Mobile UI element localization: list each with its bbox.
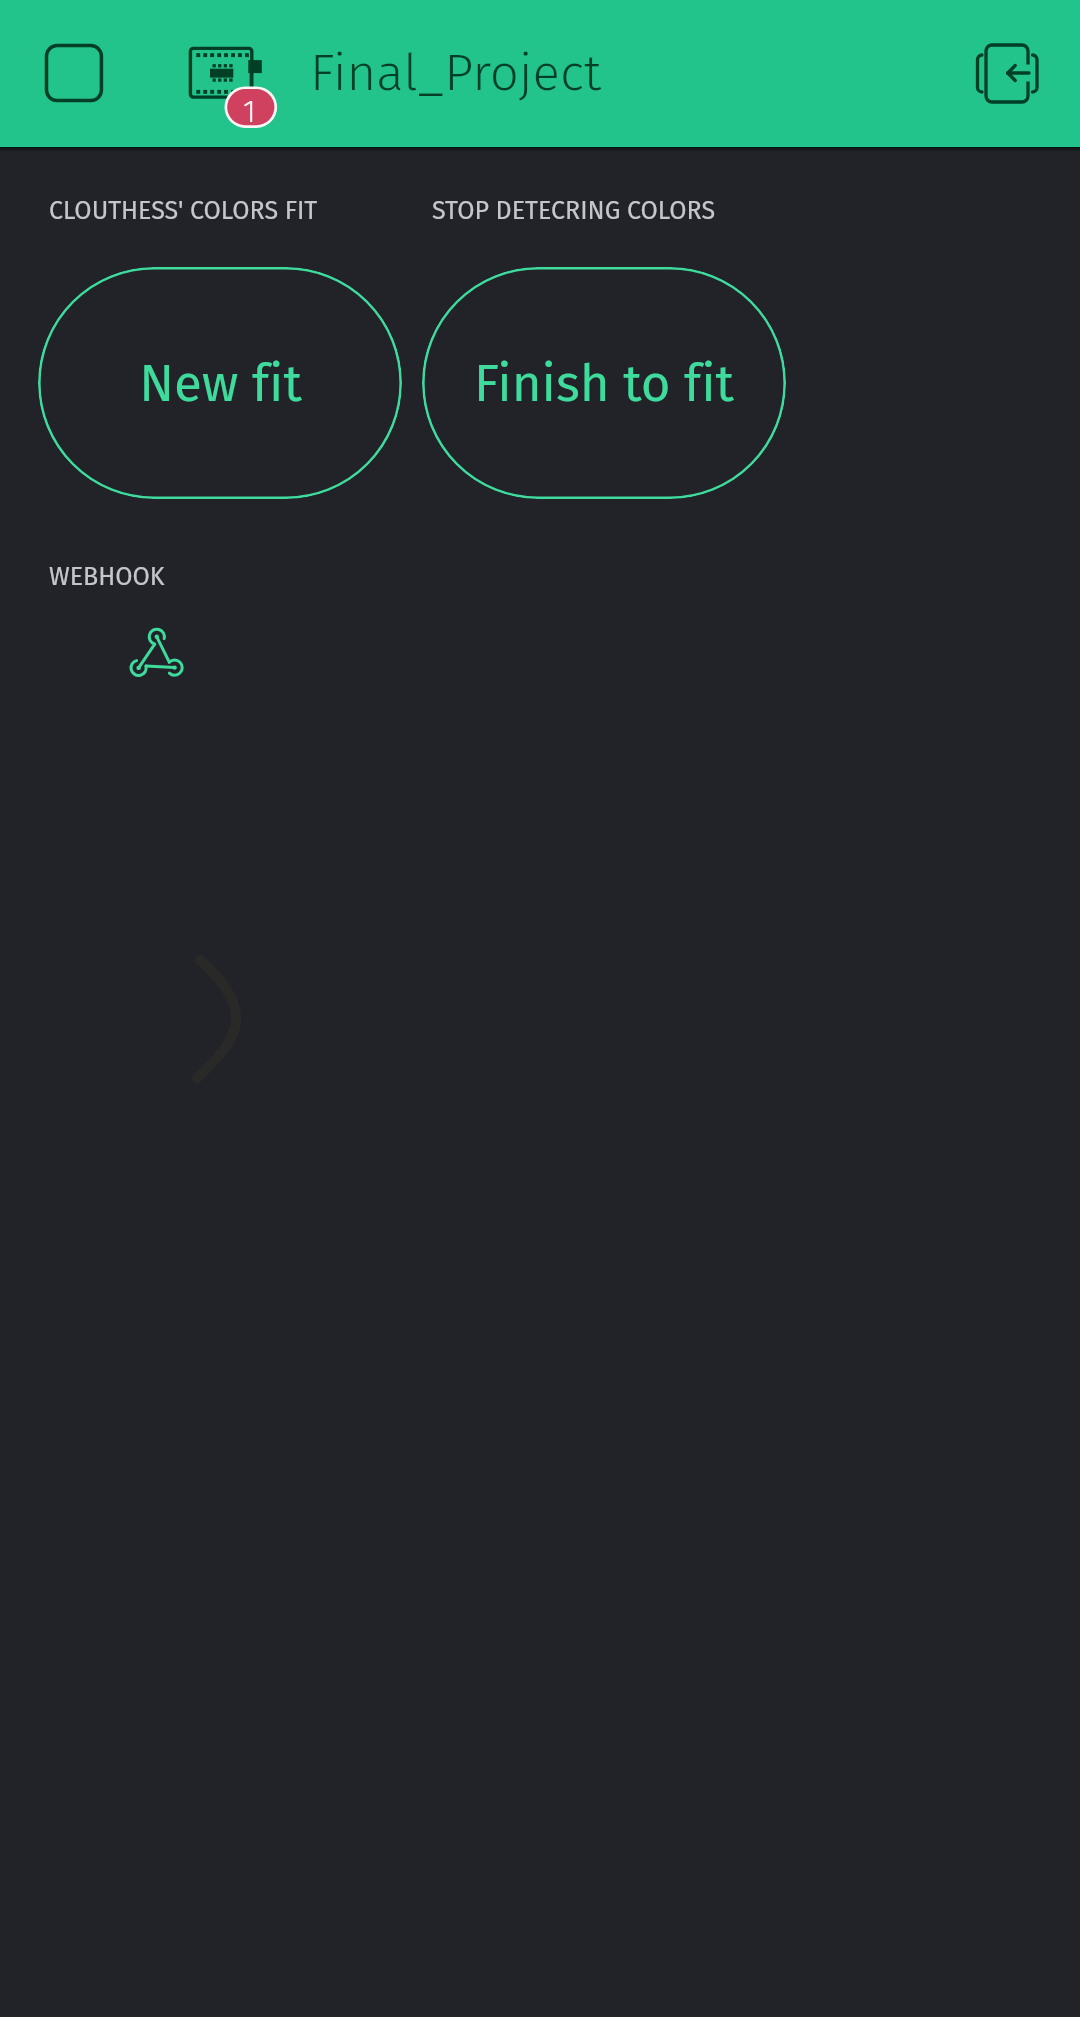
staticText: CLOUTHESS' COLORS FIT xyxy=(49,196,318,226)
staticText: Final_Project xyxy=(310,42,602,103)
button[interactable]: Finish to fit xyxy=(422,267,786,499)
button[interactable]: Webhook xyxy=(126,622,184,680)
button[interactable]: Stop xyxy=(44,42,108,106)
staticText: WEBHOOK xyxy=(49,562,165,592)
staticText: New fit xyxy=(139,353,302,414)
staticText: Finish to fit xyxy=(474,353,734,414)
button[interactable]: Board xyxy=(186,42,278,132)
button[interactable]: New fit xyxy=(38,267,402,499)
button[interactable]: Log out xyxy=(971,38,1043,110)
staticText: STOP DETECRING COLORS xyxy=(432,196,716,226)
staticText: 1 xyxy=(243,93,256,130)
